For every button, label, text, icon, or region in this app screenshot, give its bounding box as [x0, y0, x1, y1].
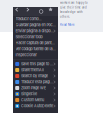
button[interactable]: Traducir esta página (subtít [13, 79, 58, 85]
button[interactable]: Seleccionar todo [13, 34, 58, 40]
staticText: Save this page to Read Later [21, 62, 54, 66]
staticText: Read More [60, 23, 75, 26]
staticText: Guardar página en Pocket [16, 23, 56, 27]
staticText: others. [60, 15, 70, 18]
button[interactable]: Guardar página en Pocket [13, 22, 58, 28]
button[interactable]: Forward [26, 7, 34, 16]
staticText: workers are happy to [60, 1, 88, 4]
button[interactable]: Read More [60, 23, 75, 26]
button[interactable]: Bookmark [48, 7, 56, 16]
staticText: Custom Menu [21, 98, 44, 102]
staticText: ShareThemAll [21, 68, 44, 72]
staticText: Enviar página a dispositivo [16, 29, 54, 33]
button[interactable]: Inspeccionar [13, 52, 58, 58]
button[interactable]: Back [14, 7, 22, 16]
staticText: Inspeccionar [16, 53, 37, 57]
staticText: Traducir como... [16, 17, 42, 21]
button[interactable]: ShareThemAll [13, 67, 58, 73]
button[interactable]: SingleFile [13, 91, 58, 97]
staticText: Cookie AutoDelete [21, 104, 53, 108]
staticText: SingleFile [21, 92, 37, 96]
staticText: Ver código fuente de la página [16, 47, 56, 51]
button[interactable]: Custom Menu [13, 97, 58, 103]
staticText: Traducir esta página (subtít [21, 80, 54, 84]
staticText: Hacer captura de pantalla [16, 41, 56, 45]
staticText: Zoom Page WE [21, 86, 46, 90]
button[interactable]: Hacer captura de pantalla [13, 40, 58, 46]
button[interactable]: Search by Image [13, 73, 58, 79]
staticText: Search by Image [21, 74, 48, 78]
button[interactable]: Traducir como... [13, 16, 58, 22]
staticText: give their time and [60, 6, 87, 9]
button[interactable]: Zoom Page WE [13, 85, 58, 91]
button[interactable]: Reload [37, 7, 45, 16]
button[interactable]: Cookie AutoDelete [13, 103, 58, 109]
staticText: knowledge with [60, 10, 83, 14]
button[interactable]: Enviar página a dispositivo [13, 28, 58, 34]
button[interactable]: Save this page to Read Later [13, 61, 58, 67]
staticText: Seleccionar todo [16, 35, 43, 39]
button[interactable]: Ver código fuente de la página [13, 46, 58, 52]
